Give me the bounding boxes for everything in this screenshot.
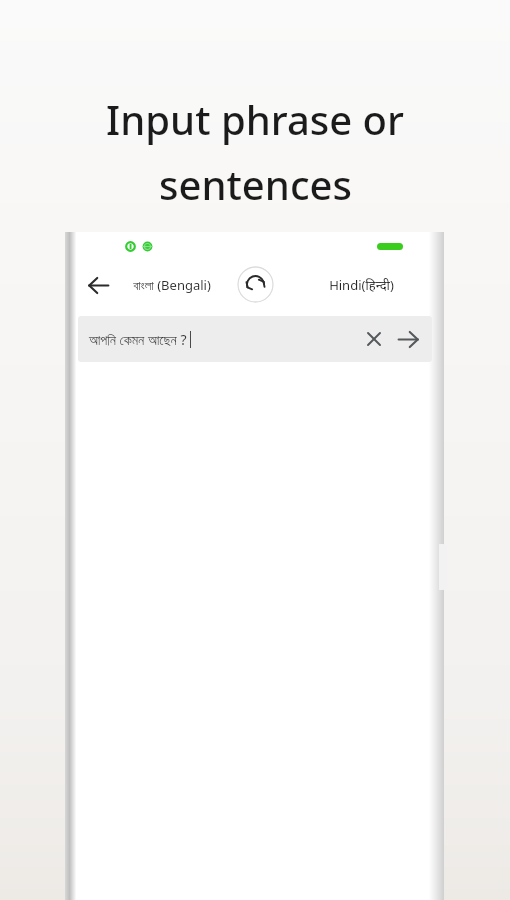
- staticText: sentences: [159, 157, 352, 211]
- staticText: Hindi(हिन्दी): [329, 276, 394, 294]
- button[interactable]: Translate: [392, 323, 424, 355]
- staticText: বাংলা (Bengali): [133, 276, 211, 294]
- staticText: আপনি কেমন আছেন ?: [89, 330, 187, 349]
- button[interactable]: Hindi(हिन्दी): [302, 265, 420, 305]
- button[interactable]: Swap languages: [237, 266, 274, 303]
- button[interactable]: Clear: [359, 324, 389, 354]
- button[interactable]: আপনি কেমন আছেন ?: [78, 316, 432, 362]
- button[interactable]: Back: [76, 263, 120, 307]
- button[interactable]: বাংলা (Bengali): [111, 265, 233, 305]
- staticText: Input phrase or: [106, 92, 404, 146]
